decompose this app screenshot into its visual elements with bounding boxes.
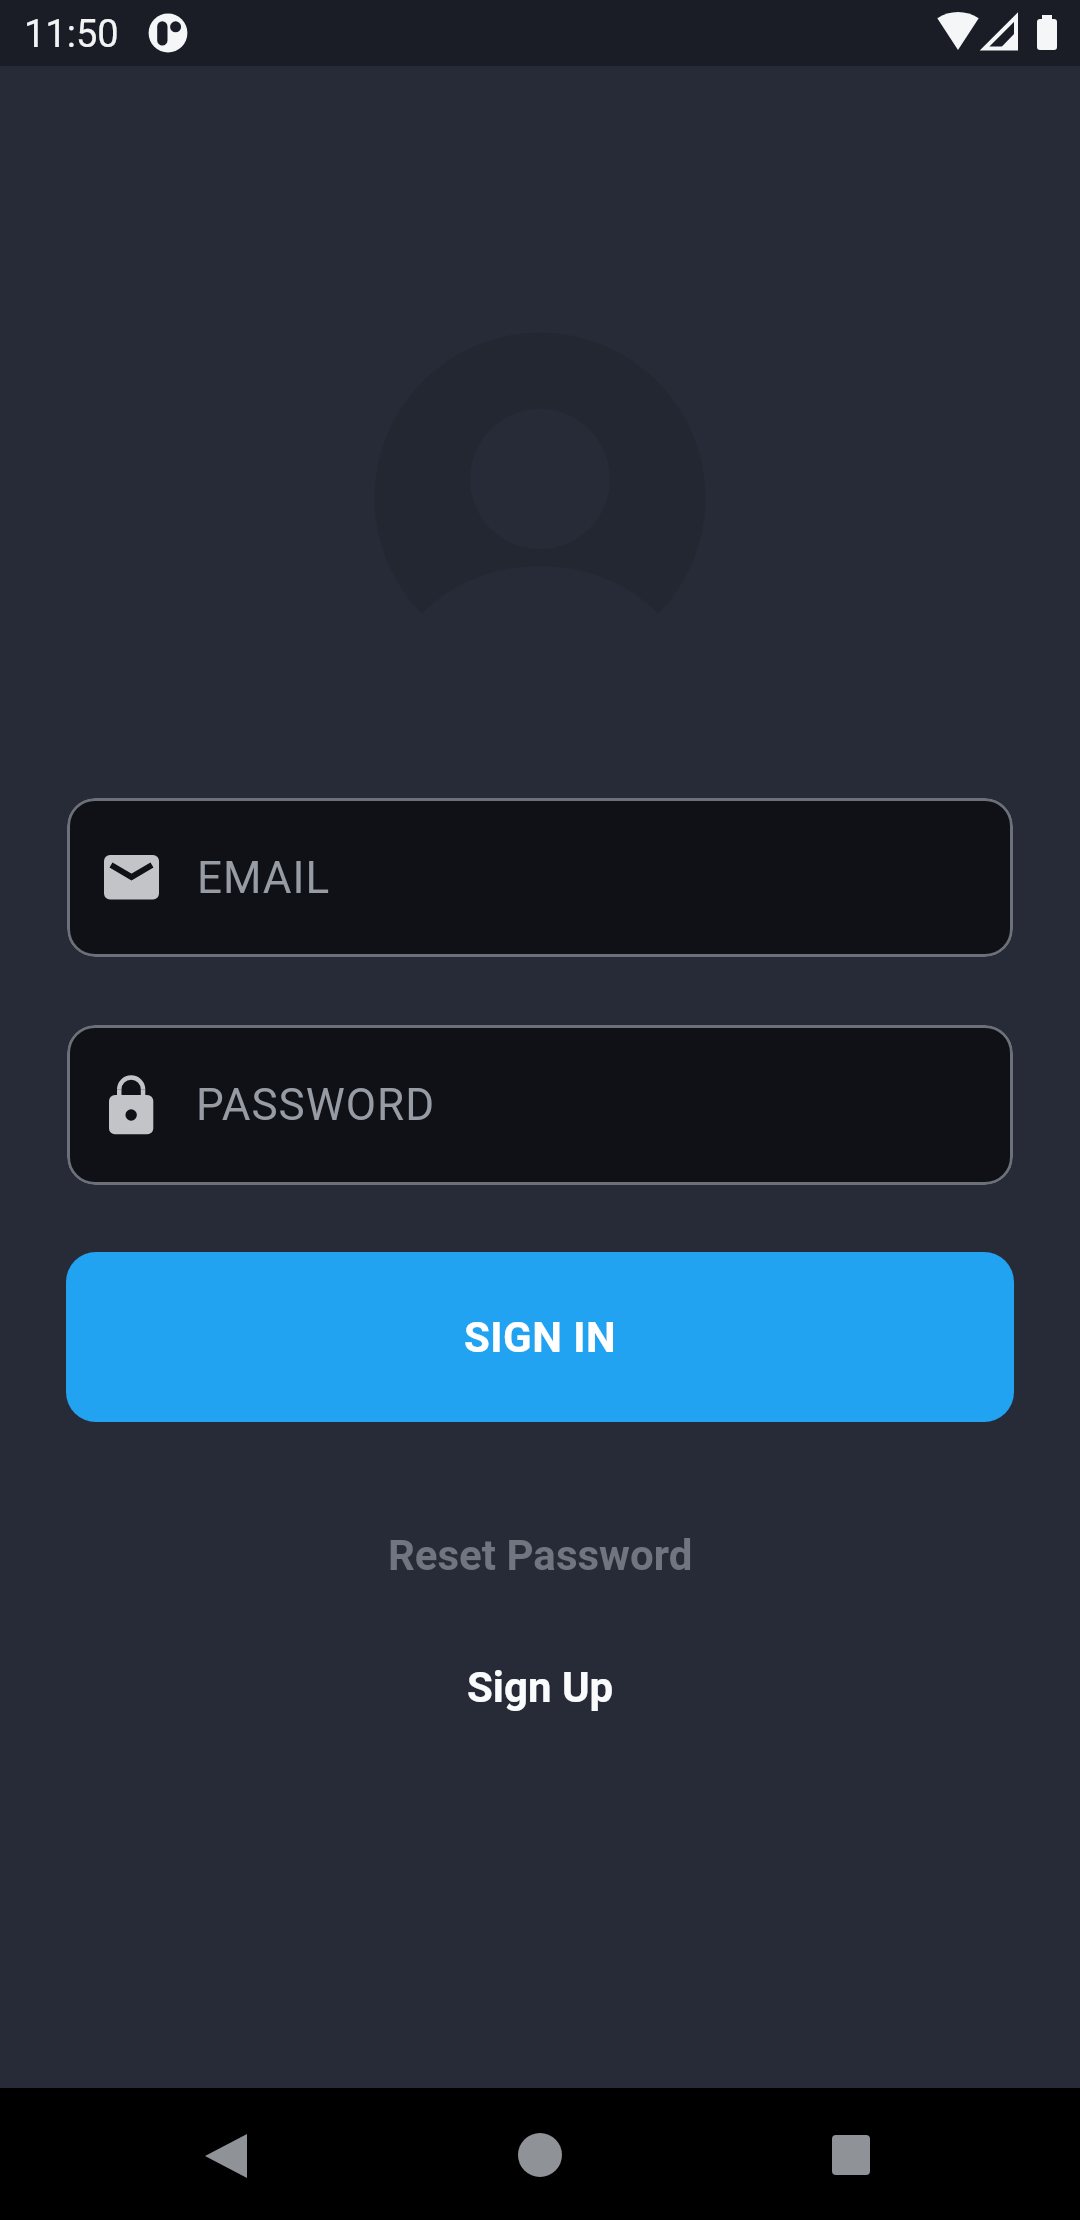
button[interactable]: EMAIL <box>67 798 1013 957</box>
staticText: EMAIL <box>197 852 331 904</box>
button[interactable]: SIGN IN <box>66 1252 1014 1422</box>
button[interactable]: PASSWORD <box>67 1025 1013 1185</box>
button[interactable] <box>360 2088 720 2220</box>
button[interactable]: Reset Password <box>388 1531 693 1580</box>
staticText: 11:50 <box>24 12 119 57</box>
staticText: SIGN IN <box>464 1313 617 1362</box>
button[interactable]: Sign Up <box>467 1663 614 1712</box>
button[interactable] <box>720 2088 1080 2220</box>
button[interactable] <box>0 2088 360 2220</box>
staticText: PASSWORD <box>196 1079 436 1131</box>
